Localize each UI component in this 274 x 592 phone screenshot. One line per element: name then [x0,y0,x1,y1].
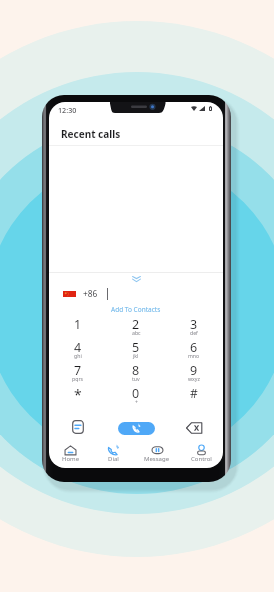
button[interactable]: Add To Contacts [49,303,223,315]
staticText: Home [62,455,80,463]
staticText: tuv [132,375,140,382]
staticText: jkl [133,352,139,359]
button[interactable]: 2 [107,313,165,336]
staticText: 8 [132,362,140,379]
staticText: Dial [108,455,119,463]
button[interactable]: Notes [72,420,84,434]
staticText: 5 [132,339,140,356]
staticText: # [190,385,198,401]
staticText: ghi [74,352,82,359]
staticText: 12:30 [58,105,77,115]
staticText: 4 [74,339,82,356]
button[interactable]: 1 [49,313,107,336]
staticText: Recent calls [61,127,121,141]
button[interactable]: Message [135,441,179,467]
button[interactable]: Home [49,441,92,467]
staticText: Control [191,455,212,463]
button[interactable]: 4 [49,336,107,359]
staticText: 7 [74,362,82,379]
staticText: 3 [190,316,198,333]
staticText: wxyz [188,375,200,382]
button[interactable]: # [165,382,223,405]
button[interactable]: 6 [165,336,223,359]
staticText: abc [132,329,141,336]
staticText: 1 [74,316,82,333]
staticText: def [190,329,198,336]
button[interactable]: 9 [165,359,223,382]
button[interactable]: Call [118,422,155,435]
staticText: + [135,398,138,405]
button[interactable]: Control [179,441,223,467]
button[interactable]: 0 [107,382,165,405]
staticText: mno [188,352,200,359]
staticText: 6 [190,339,198,356]
staticText: Message [144,455,170,463]
staticText: pqrs [72,375,84,382]
button[interactable]: * [49,382,107,405]
button[interactable]: 3 [165,313,223,336]
button[interactable]: 8 [107,359,165,382]
button[interactable]: Dial [92,441,135,467]
staticText: 2 [132,316,140,333]
staticText: +86 [83,288,98,299]
staticText: * [74,385,82,404]
staticText: 9 [190,362,198,379]
button[interactable]: Backspace [186,422,203,434]
staticText: Add To Contacts [111,305,161,314]
button[interactable]: 7 [49,359,107,382]
button[interactable]: Expand [125,273,147,285]
button[interactable]: 5 [107,336,165,359]
staticText: 0 [132,385,140,402]
